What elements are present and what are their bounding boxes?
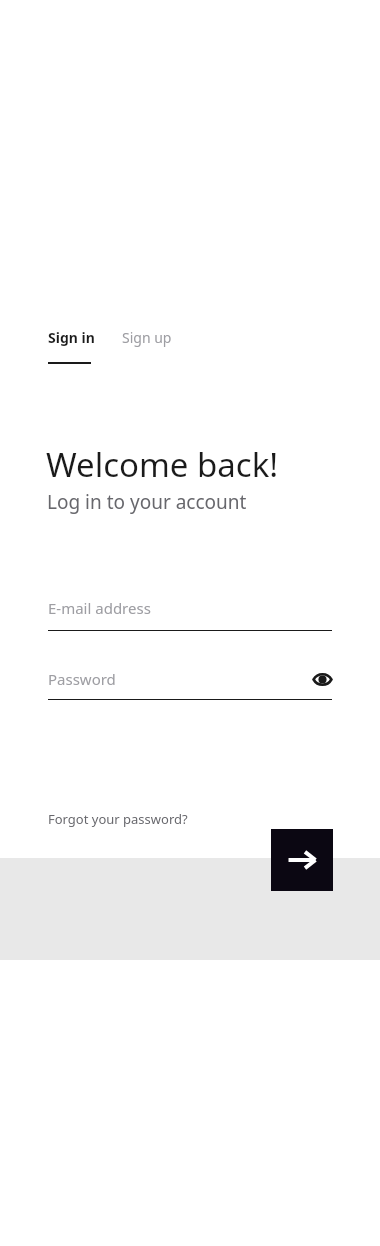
button[interactable]: E-mail address xyxy=(48,598,332,631)
button[interactable]: Sign in xyxy=(48,328,95,364)
staticText: E-mail address xyxy=(48,598,151,618)
staticText: Welcome back! xyxy=(46,442,279,487)
staticText: Log in to your account xyxy=(47,489,247,515)
button[interactable]: Forgot your password? xyxy=(48,810,188,828)
button[interactable]: Sign up xyxy=(122,328,172,347)
button[interactable]: Show password xyxy=(313,672,332,687)
staticText: Password xyxy=(48,669,116,689)
staticText: Sign up xyxy=(122,328,172,347)
button[interactable]: Password xyxy=(48,669,332,689)
staticText: Sign in xyxy=(48,328,95,347)
button[interactable]: Continue xyxy=(271,829,333,891)
